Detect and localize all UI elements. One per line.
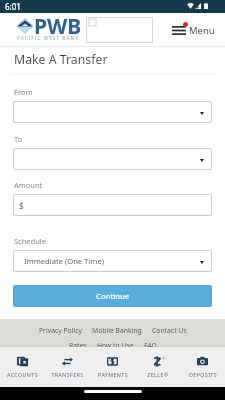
button[interactable]: FAQ xyxy=(144,341,157,350)
staticText: Make A Transfer xyxy=(14,51,108,68)
staticText: Schedule xyxy=(14,236,46,246)
button[interactable] xyxy=(13,101,212,123)
staticText: $ xyxy=(19,200,24,211)
staticText: DEPOSITS xyxy=(189,371,217,378)
button[interactable]: TRANSFERS xyxy=(45,347,90,378)
staticText: ACCOUNTS xyxy=(7,371,38,378)
button[interactable] xyxy=(13,148,212,170)
button[interactable]: Mobile Banking xyxy=(92,326,142,335)
staticText: 6:01 xyxy=(5,1,21,12)
staticText: Immediate (One Time) xyxy=(24,256,104,266)
button[interactable]: DEPOSITS xyxy=(180,347,225,378)
staticText: PAYMENTS xyxy=(98,371,128,378)
button[interactable]: ZELLE® xyxy=(135,347,180,378)
button[interactable]: PAYMENTS xyxy=(90,347,135,378)
button[interactable]: Privacy Policy xyxy=(39,326,82,335)
staticText: TRANSFERS xyxy=(51,371,84,378)
button[interactable]: How to Use xyxy=(97,341,134,350)
staticText: PACIFIC WEST BANK xyxy=(17,35,80,42)
button[interactable]: Continue xyxy=(13,285,212,307)
staticText: ZELLE® xyxy=(147,371,169,378)
staticText: Amount xyxy=(14,180,43,190)
staticText: Menu xyxy=(189,24,215,37)
button[interactable]: Menu xyxy=(166,18,216,38)
button[interactable]: Contact Us xyxy=(152,326,187,335)
button[interactable]: $ xyxy=(13,194,212,216)
staticText: To xyxy=(14,134,23,144)
button[interactable]: Rates xyxy=(69,341,87,350)
button[interactable]: ACCOUNTS xyxy=(0,347,45,378)
staticText: PWB xyxy=(34,12,82,41)
button[interactable]: Immediate (One Time) xyxy=(13,250,212,272)
staticText: Continue xyxy=(96,291,130,302)
staticText: From xyxy=(14,87,33,97)
